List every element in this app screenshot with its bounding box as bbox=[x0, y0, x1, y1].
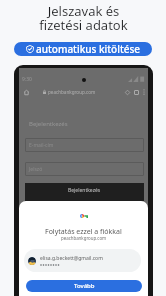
button[interactable]: Bejelentkezés bbox=[25, 183, 144, 201]
staticText: peachbankgroup.com bbox=[61, 235, 107, 241]
staticText: automatikus kitöltése bbox=[36, 42, 141, 56]
staticText: E-mail-cím bbox=[29, 142, 54, 149]
staticText: Bejelentkezés bbox=[29, 120, 68, 128]
staticText: Bejelentkezés bbox=[68, 187, 101, 194]
button[interactable]: Tovább bbox=[26, 280, 142, 292]
staticText: elisa.g.beckett@gmail.com bbox=[40, 255, 103, 262]
staticText: Folytatás ezzel a fiókkal bbox=[45, 227, 122, 237]
staticText: Jelszó bbox=[29, 166, 43, 173]
button[interactable]: elisa.g.beckett@gmail.com bbox=[24, 249, 141, 272]
staticText: Tovább bbox=[74, 282, 95, 290]
staticText: Jelszavak és fizetési adatok bbox=[39, 2, 128, 34]
button[interactable]: automatikus kitöltése bbox=[14, 42, 152, 56]
button[interactable]: Home bbox=[21, 87, 31, 97]
staticText: peachbankgroup.com bbox=[48, 89, 96, 95]
staticText: 9:30 bbox=[22, 76, 32, 83]
